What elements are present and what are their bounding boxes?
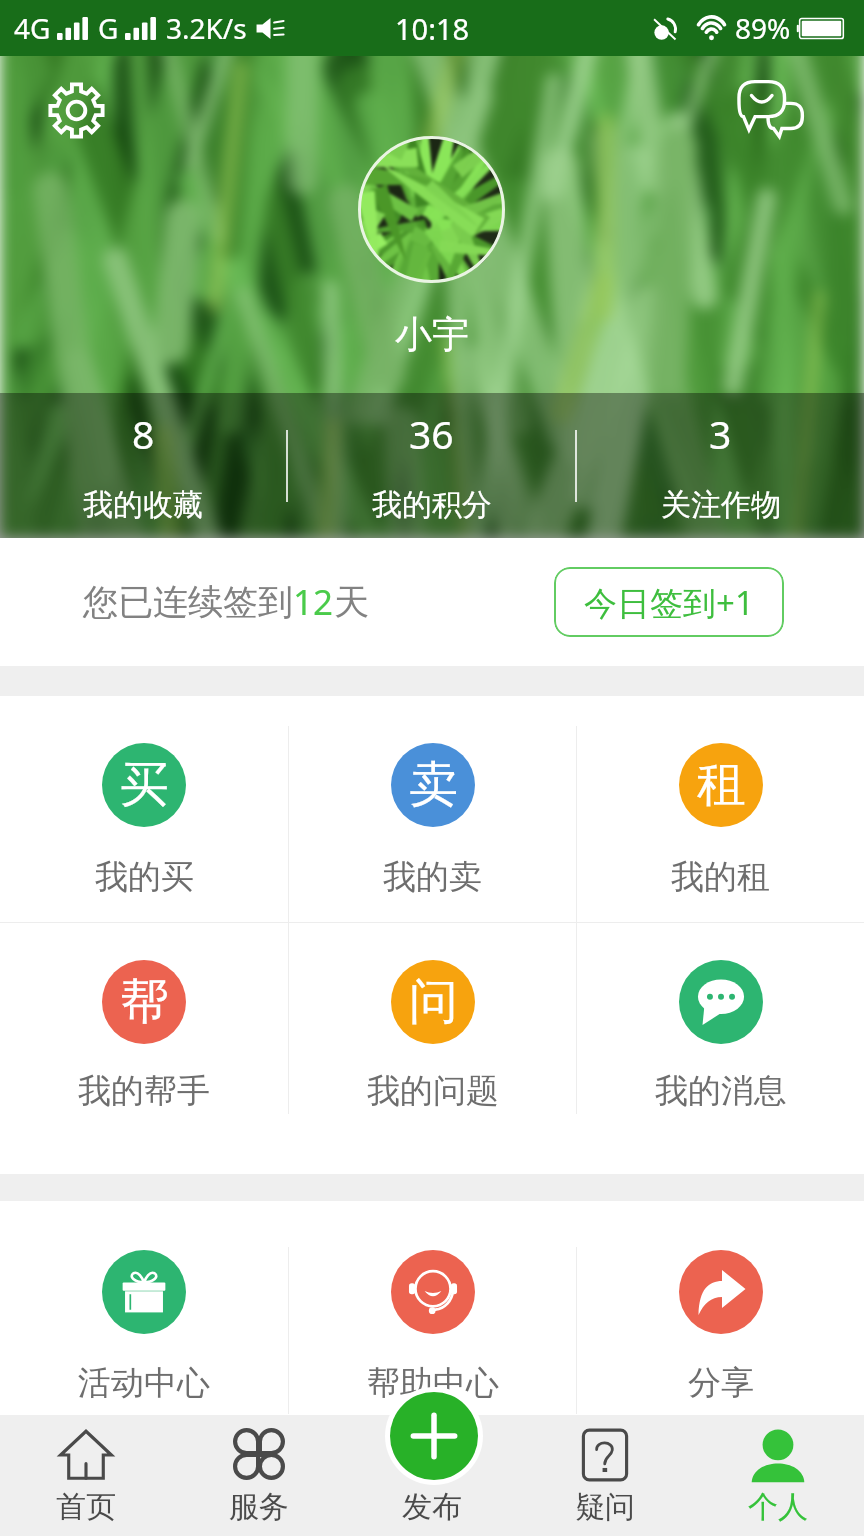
- staticText: 今日签到+1: [584, 580, 754, 625]
- staticText: 帮助中心: [367, 1362, 499, 1404]
- button[interactable]: Settings: [32, 66, 121, 155]
- button[interactable]: 今日签到+1: [554, 567, 784, 637]
- button[interactable]: 活动中心: [0, 1201, 288, 1414]
- button[interactable]: Avatar: [358, 136, 505, 283]
- staticText: 4G: [14, 9, 51, 47]
- staticText: 租: [697, 754, 746, 816]
- staticText: 12: [293, 578, 334, 626]
- staticText: 活动中心: [78, 1362, 210, 1404]
- staticText: 3.2K/s: [166, 9, 247, 47]
- button[interactable]: Messages: [724, 64, 816, 156]
- staticText: 我的积分: [372, 486, 492, 524]
- staticText: 89%: [735, 9, 791, 47]
- staticText: 首页: [56, 1488, 116, 1526]
- staticText: 36: [409, 407, 454, 460]
- button[interactable]: 买: [0, 696, 288, 922]
- button[interactable]: 3: [577, 393, 864, 538]
- staticText: 疑问: [575, 1488, 635, 1526]
- staticText: 我的买: [95, 856, 194, 898]
- button[interactable]: 发布: [345, 1415, 518, 1536]
- staticText: 发布: [402, 1488, 462, 1526]
- button[interactable]: Publish: [390, 1392, 478, 1480]
- button[interactable]: 疑问: [518, 1415, 691, 1536]
- staticText: 我的收藏: [83, 486, 203, 524]
- button[interactable]: 36: [288, 393, 575, 538]
- staticText: 天: [334, 580, 369, 624]
- staticText: 买: [120, 754, 169, 816]
- staticText: 小宇: [0, 311, 864, 358]
- staticText: 我的卖: [383, 856, 482, 898]
- staticText: 我的消息: [655, 1070, 787, 1112]
- button[interactable]: 分享: [577, 1201, 864, 1414]
- staticText: 卖: [409, 754, 458, 816]
- staticText: 我的帮手: [78, 1070, 210, 1112]
- staticText: 我的租: [671, 856, 770, 898]
- button[interactable]: 首页: [0, 1415, 172, 1536]
- button[interactable]: 帮: [0, 923, 288, 1174]
- button[interactable]: 租: [577, 696, 864, 922]
- staticText: 个人: [748, 1488, 808, 1526]
- staticText: 3: [709, 407, 732, 460]
- button[interactable]: 个人: [691, 1415, 864, 1536]
- staticText: 服务: [229, 1488, 289, 1526]
- staticText: 您已连续签到: [83, 580, 293, 624]
- button[interactable]: 帮助中心: [289, 1201, 576, 1414]
- staticText: 我的问题: [367, 1070, 499, 1112]
- button[interactable]: 8: [0, 393, 286, 538]
- staticText: 分享: [688, 1362, 754, 1404]
- staticText: 10:18: [395, 9, 470, 48]
- staticText: G: [98, 9, 119, 47]
- staticText: 8: [132, 407, 155, 460]
- staticText: 关注作物: [661, 486, 781, 524]
- staticText: 帮: [120, 971, 169, 1033]
- button[interactable]: 我的消息: [577, 923, 864, 1174]
- button[interactable]: 服务: [172, 1415, 345, 1536]
- staticText: 问: [409, 971, 458, 1033]
- button[interactable]: 问: [289, 923, 576, 1174]
- button[interactable]: 卖: [289, 696, 576, 922]
